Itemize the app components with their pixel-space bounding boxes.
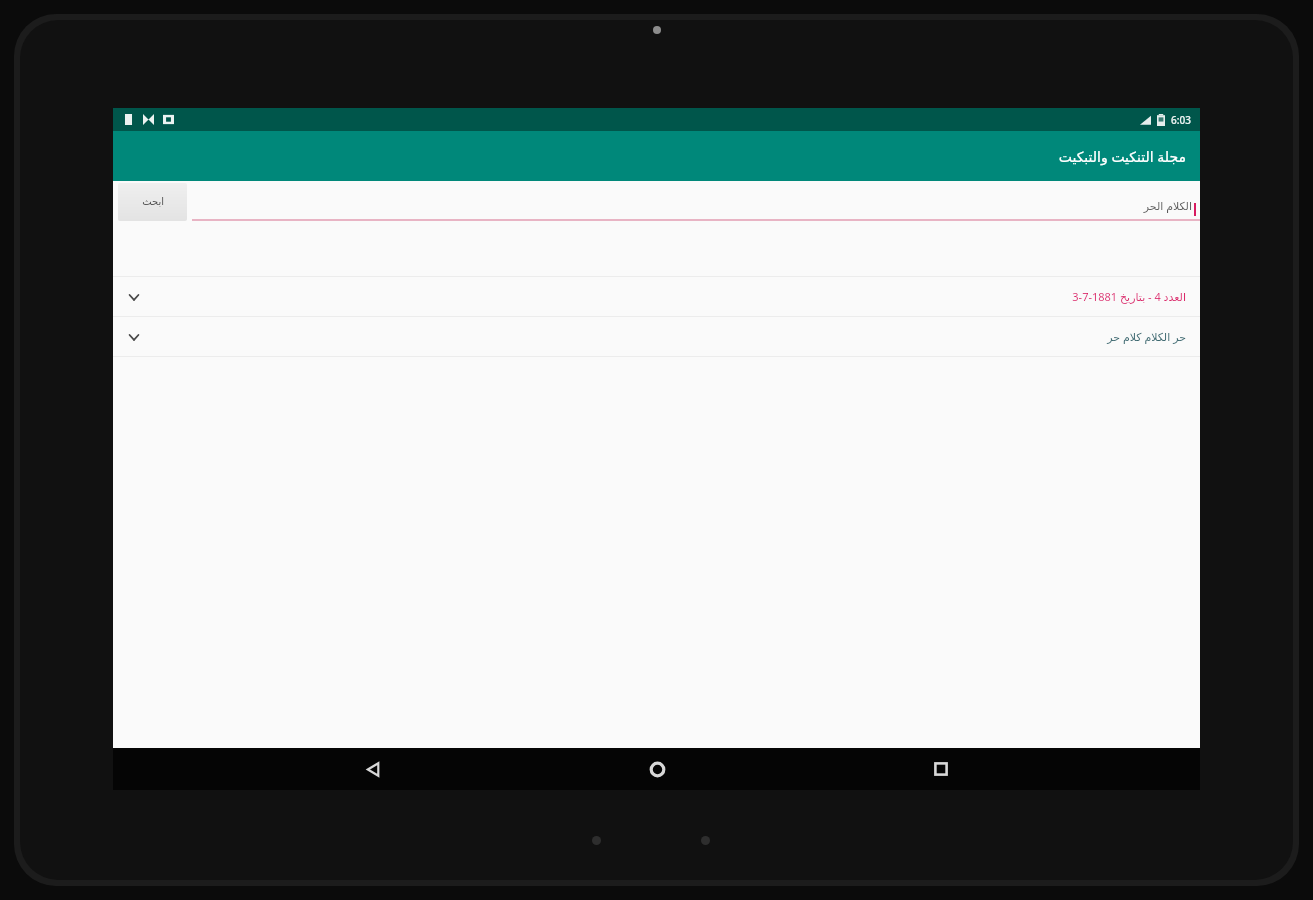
button[interactable]: Expand — [113, 277, 1200, 316]
button[interactable]: Back — [348, 748, 398, 790]
staticText: الكلام الحر — [1143, 198, 1192, 213]
button[interactable]: Home — [632, 748, 682, 790]
staticText: ابحث — [142, 196, 164, 208]
other: Expand — [123, 286, 145, 308]
button[interactable]: ابحث — [118, 183, 187, 221]
staticText: حر الكلام كلام حر — [1107, 329, 1186, 344]
staticText: العدد 4 - بتاريخ 1881-7-3 — [1072, 289, 1186, 304]
button[interactable]: Expand — [113, 317, 1200, 356]
staticText: مجلة التنكيت والتبكيت — [1058, 147, 1186, 166]
button[interactable]: الكلام الحر — [192, 181, 1200, 221]
staticText: 6:03 — [1171, 113, 1191, 127]
button[interactable]: Recent apps — [916, 748, 966, 790]
other: Expand — [123, 326, 145, 348]
